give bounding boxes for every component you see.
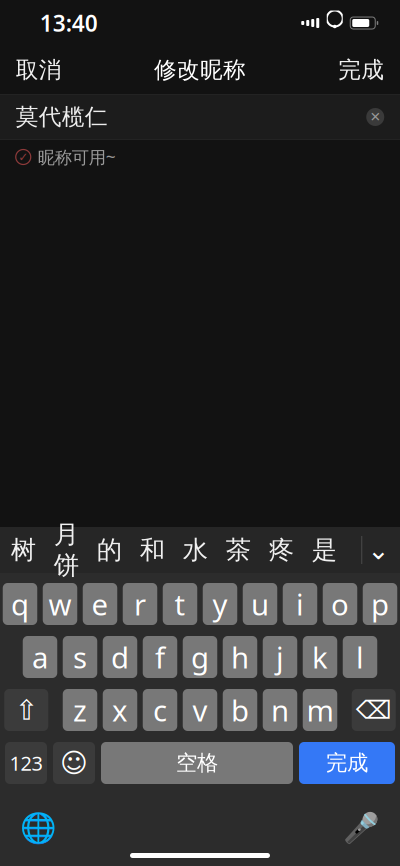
button[interactable]: 切换键盘 <box>16 805 62 851</box>
button[interactable]: d <box>103 636 137 678</box>
staticText: 🎤 <box>343 811 380 845</box>
staticText: 树 <box>11 534 36 565</box>
button[interactable]: 疼 <box>260 528 303 572</box>
button[interactable]: c <box>143 689 177 731</box>
staticText: o <box>331 584 349 623</box>
button[interactable]: f <box>143 636 177 678</box>
staticText: n <box>271 690 289 729</box>
staticText: 取消 <box>16 56 62 84</box>
button[interactable]: s <box>63 636 97 678</box>
staticText: ⇧ <box>15 694 38 726</box>
staticText: l <box>356 637 364 676</box>
button[interactable]: 删除 <box>352 689 396 731</box>
staticText: 完成 <box>338 56 384 84</box>
staticText: 空格 <box>176 750 218 776</box>
button[interactable]: 123 <box>5 742 47 784</box>
button[interactable]: 是 <box>303 528 346 572</box>
button[interactable]: z <box>63 689 97 731</box>
staticText: 茶 <box>226 534 251 565</box>
button[interactable]: 空格 <box>101 742 293 784</box>
button[interactable]: p <box>363 583 397 625</box>
button[interactable]: 清除 <box>358 100 392 134</box>
staticText: 修改昵称 <box>154 56 246 84</box>
button[interactable]: q <box>3 583 37 625</box>
staticText: r <box>134 584 146 623</box>
staticText: 是 <box>312 534 337 565</box>
button[interactable]: Shift <box>4 689 48 731</box>
staticText: k <box>312 637 328 676</box>
staticText: w <box>48 584 71 623</box>
staticText: f <box>155 637 165 676</box>
button[interactable]: 水 <box>174 528 217 572</box>
staticText: j <box>276 637 284 676</box>
staticText: 🌐 <box>20 811 57 845</box>
staticText: g <box>191 637 209 676</box>
staticText: m <box>306 690 333 729</box>
button[interactable]: 取消 <box>2 46 76 94</box>
button[interactable]: i <box>283 583 317 625</box>
staticText: c <box>153 690 167 729</box>
button[interactable]: u <box>243 583 277 625</box>
button[interactable]: 和 <box>131 528 174 572</box>
staticText: s <box>73 637 87 676</box>
staticText: y <box>212 584 227 623</box>
button[interactable]: h <box>223 636 257 678</box>
staticText: x <box>112 690 128 729</box>
button[interactable]: e <box>83 583 117 625</box>
staticText: 月饼 <box>54 519 79 581</box>
staticText: ☺ <box>60 748 88 778</box>
button[interactable]: k <box>303 636 337 678</box>
staticText: u <box>251 584 269 623</box>
staticText: q <box>11 584 29 623</box>
staticText: 13:40 <box>40 8 98 38</box>
staticText: 完成 <box>326 750 368 776</box>
button[interactable]: y <box>203 583 237 625</box>
staticText: h <box>231 637 249 676</box>
button[interactable]: 茶 <box>217 528 260 572</box>
button[interactable]: m <box>303 689 337 731</box>
button[interactable]: g <box>183 636 217 678</box>
button[interactable]: 完成 <box>299 742 395 784</box>
button[interactable]: 表情 <box>53 742 95 784</box>
staticText: ⌄ <box>367 535 389 565</box>
staticText: z <box>73 690 87 729</box>
button[interactable]: 语音输入 <box>338 805 384 851</box>
staticText: ✓ <box>18 150 28 164</box>
button[interactable]: 的 <box>88 528 131 572</box>
staticText: 123 <box>9 750 42 776</box>
button[interactable]: a <box>23 636 57 678</box>
staticText: p <box>371 584 389 623</box>
staticText: ✕ <box>370 109 381 124</box>
staticText: 和 <box>140 534 165 565</box>
staticText: 昵称可用~ <box>38 145 116 168</box>
button[interactable]: 完成 <box>324 46 398 94</box>
button[interactable]: o <box>323 583 357 625</box>
button[interactable]: 收起候选词 <box>356 528 400 572</box>
button[interactable]: n <box>263 689 297 731</box>
staticText: 的 <box>97 534 122 565</box>
staticText: b <box>231 690 249 729</box>
staticText: e <box>91 584 108 623</box>
button[interactable]: b <box>223 689 257 731</box>
button[interactable]: l <box>343 636 377 678</box>
button[interactable]: r <box>123 583 157 625</box>
button[interactable]: 树 <box>2 528 45 572</box>
button[interactable]: 月饼 <box>45 528 88 572</box>
staticText: i <box>296 584 304 623</box>
button[interactable]: j <box>263 636 297 678</box>
button[interactable]: x <box>103 689 137 731</box>
staticText: 疼 <box>269 534 294 565</box>
button[interactable]: v <box>183 689 217 731</box>
staticText: ⌫ <box>356 696 392 724</box>
staticText: d <box>111 637 129 676</box>
staticText: 水 <box>183 534 208 565</box>
staticText: v <box>192 690 207 729</box>
staticText: t <box>174 584 185 623</box>
staticText: 莫代榄仁 <box>16 103 108 131</box>
button[interactable]: w <box>43 583 77 625</box>
staticText: a <box>32 637 48 676</box>
button[interactable]: t <box>163 583 197 625</box>
